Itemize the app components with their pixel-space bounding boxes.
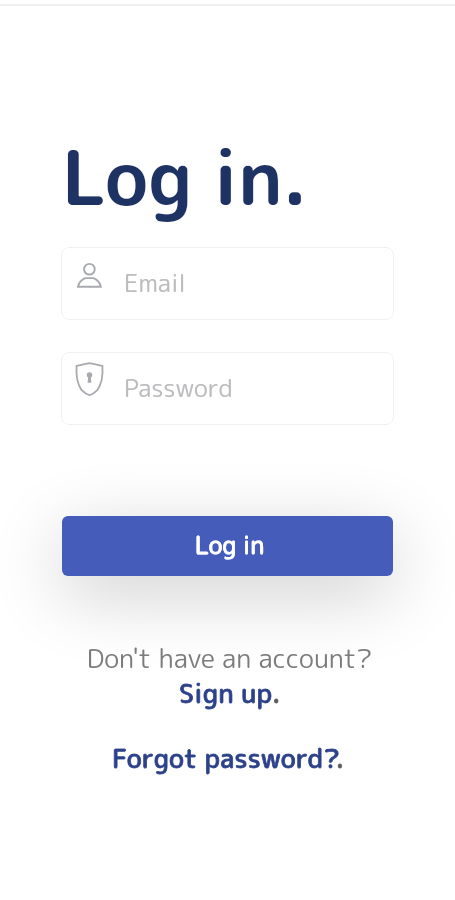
button[interactable]: Forgot password?. bbox=[112, 739, 345, 776]
staticText: Log in. bbox=[62, 124, 308, 229]
staticText: Email bbox=[124, 265, 186, 299]
staticText: Sign up. bbox=[179, 674, 281, 711]
staticText: Sign up. bbox=[179, 674, 281, 711]
staticText: Don't have an account? bbox=[2, 639, 455, 676]
button[interactable]: Sign up. bbox=[179, 674, 281, 711]
button[interactable]: Log in bbox=[62, 516, 393, 576]
button[interactable]: Password bbox=[61, 352, 394, 425]
staticText: Forgot password?. bbox=[112, 739, 345, 776]
button[interactable]: Email bbox=[61, 247, 394, 320]
staticText: Password bbox=[124, 370, 233, 404]
staticText: Forgot password?. bbox=[112, 739, 345, 776]
staticText: Log in bbox=[195, 528, 265, 562]
staticText: Log in bbox=[195, 528, 265, 562]
